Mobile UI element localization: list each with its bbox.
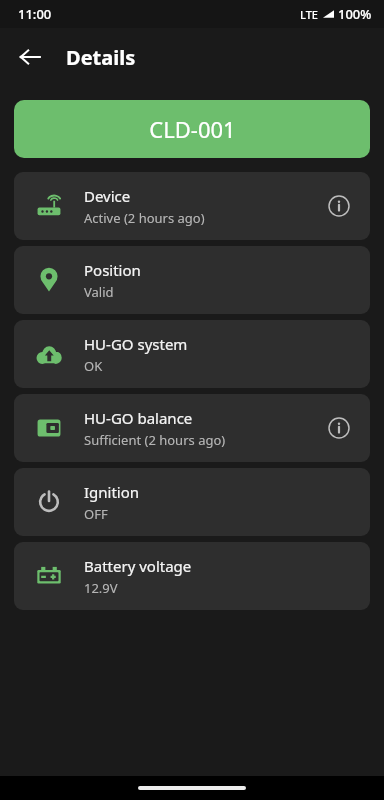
staticText: 11:00 xyxy=(18,5,52,23)
button[interactable]: Battery voltage xyxy=(14,542,370,610)
staticText: LTE xyxy=(300,7,318,22)
staticText: OK xyxy=(84,357,103,375)
staticText: Details xyxy=(66,44,136,71)
staticText: OFF xyxy=(84,505,108,523)
button[interactable]: Ignition xyxy=(14,468,370,536)
staticText: Ignition xyxy=(84,482,140,502)
button[interactable]: Info about HU-GO balance xyxy=(322,411,356,445)
staticText: Position xyxy=(84,260,141,280)
button[interactable]: HU-GO balance xyxy=(14,394,370,462)
button[interactable]: Back xyxy=(8,35,52,79)
button[interactable]: Device xyxy=(14,172,370,240)
staticText: HU-GO system xyxy=(84,334,188,354)
button[interactable]: HU-GO system xyxy=(14,320,370,388)
button[interactable]: CLD-001 xyxy=(14,100,370,158)
staticText: 12.9V xyxy=(84,579,118,597)
button[interactable]: Info about Device xyxy=(322,189,356,223)
staticText: Device xyxy=(84,186,131,206)
staticText: Sufficient (2 hours ago) xyxy=(84,431,226,449)
staticText: Battery voltage xyxy=(84,556,192,576)
staticText: Valid xyxy=(84,283,114,301)
staticText: Active (2 hours ago) xyxy=(84,209,205,227)
button[interactable]: Position xyxy=(14,246,370,314)
staticText: HU-GO balance xyxy=(84,408,193,428)
staticText: CLD-001 xyxy=(149,114,236,144)
staticText: 100% xyxy=(338,5,372,23)
